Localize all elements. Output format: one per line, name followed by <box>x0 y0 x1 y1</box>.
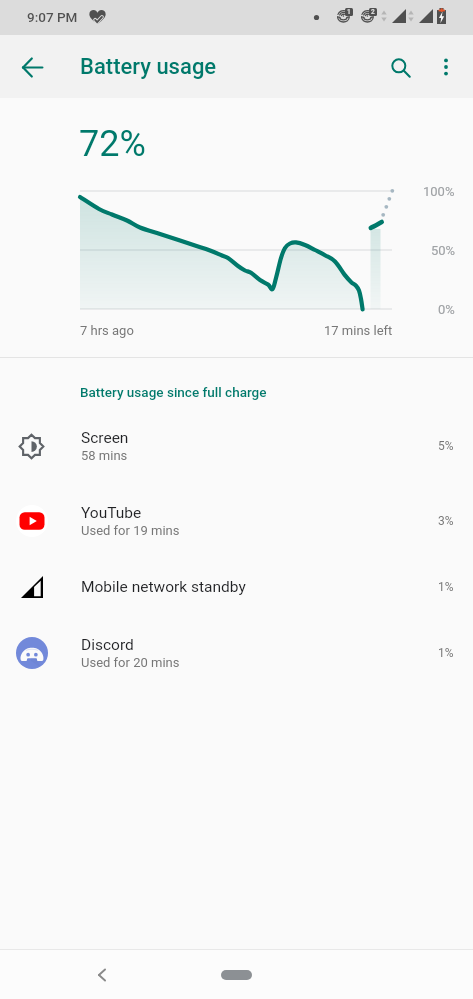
staticText: Discord <box>81 636 134 654</box>
staticText: 2 <box>371 8 375 16</box>
button[interactable]: Screen <box>0 413 473 479</box>
staticText: Mobile network standby <box>81 578 246 596</box>
staticText: 50% <box>431 243 456 258</box>
button[interactable]: Search <box>377 44 423 90</box>
staticText: Battery usage <box>80 54 217 80</box>
staticText: 5% <box>438 439 454 453</box>
staticText: Screen <box>81 429 129 447</box>
staticText: 100% <box>423 184 455 199</box>
staticText: 9:07 PM <box>27 9 78 25</box>
button[interactable]: More options <box>423 44 469 90</box>
staticText: Used for 19 mins <box>81 523 180 538</box>
staticText: 1% <box>438 646 454 660</box>
staticText: 1% <box>438 580 454 594</box>
staticText: 3% <box>438 514 454 528</box>
staticText: 0% <box>438 302 455 317</box>
staticText: 58 mins <box>81 448 128 463</box>
staticText: Battery usage since full charge <box>80 384 267 400</box>
staticText: 1 <box>347 8 351 16</box>
button[interactable]: Home <box>221 970 252 980</box>
staticText: 17 mins left <box>324 323 393 338</box>
staticText: 72% <box>79 123 146 165</box>
staticText: YouTube <box>81 504 142 522</box>
button[interactable]: YouTube <box>0 488 473 554</box>
staticText: 7 hrs ago <box>80 323 134 338</box>
button[interactable]: Back <box>82 955 122 995</box>
button[interactable]: Discord <box>0 620 473 686</box>
button[interactable]: Mobile network standby <box>0 554 473 620</box>
button[interactable]: Navigate up <box>9 44 55 90</box>
staticText: Used for 20 mins <box>81 655 180 670</box>
